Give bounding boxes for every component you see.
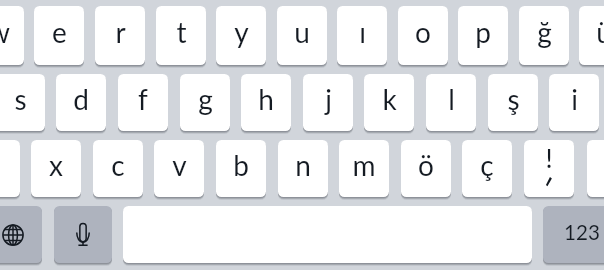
button[interactable]: c xyxy=(93,140,143,197)
staticText: l xyxy=(448,82,455,116)
button[interactable]: g xyxy=(180,74,230,131)
button[interactable]: ç xyxy=(462,140,512,197)
staticText: ı xyxy=(359,15,366,49)
button[interactable]: j xyxy=(303,74,353,131)
staticText: ç xyxy=(480,148,494,182)
staticText: u xyxy=(294,15,310,49)
staticText: s xyxy=(14,82,27,116)
button[interactable]: ğ xyxy=(519,6,569,65)
button[interactable]: w xyxy=(0,6,24,65)
button[interactable]: Dictation xyxy=(54,206,112,263)
staticText: t xyxy=(176,15,187,49)
staticText: j xyxy=(325,82,332,116)
button[interactable]: r xyxy=(95,6,145,65)
button[interactable]: x xyxy=(31,140,81,197)
button[interactable]: k xyxy=(364,74,414,131)
staticText: n xyxy=(295,148,311,182)
staticText: e xyxy=(52,15,67,49)
staticText: y xyxy=(234,15,249,49)
button[interactable]: f xyxy=(118,74,168,131)
button[interactable]: p xyxy=(458,6,508,65)
staticText: v xyxy=(172,148,187,182)
staticText: r xyxy=(115,15,126,49)
button[interactable]: h xyxy=(241,74,291,131)
button[interactable]: e xyxy=(34,6,84,65)
staticText: 123 xyxy=(564,220,600,245)
staticText: w xyxy=(0,15,10,49)
button[interactable]: y xyxy=(216,6,266,65)
button[interactable] xyxy=(0,140,20,197)
staticText: o xyxy=(415,15,431,49)
button[interactable]: ö xyxy=(401,140,451,197)
button[interactable]: o xyxy=(398,6,448,65)
staticText: m xyxy=(352,148,376,182)
button[interactable]: s xyxy=(0,74,45,131)
button[interactable]: i xyxy=(549,74,599,131)
button[interactable]: u xyxy=(277,6,327,65)
button[interactable]: m xyxy=(339,140,389,197)
button[interactable]: ! xyxy=(524,140,574,197)
staticText: p xyxy=(475,15,491,49)
staticText: k xyxy=(382,82,397,116)
button[interactable]: ş xyxy=(488,74,538,131)
button[interactable]: ı xyxy=(337,6,387,65)
staticText: ü xyxy=(596,15,604,49)
staticText: c xyxy=(111,148,125,182)
staticText: d xyxy=(73,82,89,116)
button[interactable]: 123 xyxy=(543,206,604,263)
button[interactable]: t xyxy=(156,6,206,65)
button[interactable]: n xyxy=(278,140,328,197)
staticText: g xyxy=(198,82,213,116)
staticText: f xyxy=(138,82,148,116)
staticText: x xyxy=(49,148,63,182)
staticText: ö xyxy=(418,148,434,182)
button[interactable]: v xyxy=(154,140,204,197)
staticText: h xyxy=(258,82,274,116)
button[interactable]: ü xyxy=(579,6,604,65)
button[interactable] xyxy=(587,140,604,197)
staticText: i xyxy=(571,82,578,116)
staticText: b xyxy=(233,148,249,182)
button[interactable]: l xyxy=(426,74,476,131)
button[interactable]: d xyxy=(56,74,106,131)
staticText: ş xyxy=(507,82,520,116)
staticText: ğ xyxy=(537,15,552,49)
button[interactable]: b xyxy=(216,140,266,197)
button[interactable]: Next keyboard xyxy=(0,206,42,263)
staticText: ! xyxy=(545,142,553,174)
